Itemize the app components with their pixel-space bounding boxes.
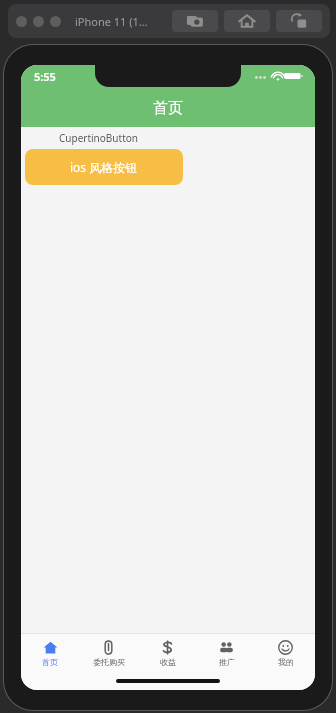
staticText: 推广 [219, 657, 235, 667]
button[interactable]: Rotate [276, 10, 322, 32]
button[interactable]: Home [224, 10, 270, 32]
button[interactable]: Window button [33, 16, 44, 27]
staticText: 委托购买 [93, 657, 125, 667]
staticText: 首页 [42, 657, 58, 667]
staticText: 我的 [278, 657, 294, 667]
button[interactable]: Screenshot [172, 10, 218, 32]
button[interactable]: Window button [50, 16, 61, 27]
staticText: ios 风格按钮 [70, 159, 138, 175]
button[interactable]: Window button [16, 16, 27, 27]
button[interactable]: 我的 [256, 634, 315, 672]
staticText: CupertinoButton [59, 131, 138, 145]
button[interactable]: 委托购买 [79, 634, 138, 672]
button[interactable]: 推广 [197, 634, 256, 672]
staticText: 首页 [153, 99, 183, 118]
staticText: iPhone 11 (1… [75, 14, 148, 29]
button[interactable]: 首页 [21, 634, 79, 672]
button[interactable]: 收益 [138, 634, 197, 672]
button[interactable]: ios 风格按钮 [25, 149, 183, 185]
staticText: 5:55 [34, 69, 56, 84]
staticText: 收益 [160, 657, 176, 667]
